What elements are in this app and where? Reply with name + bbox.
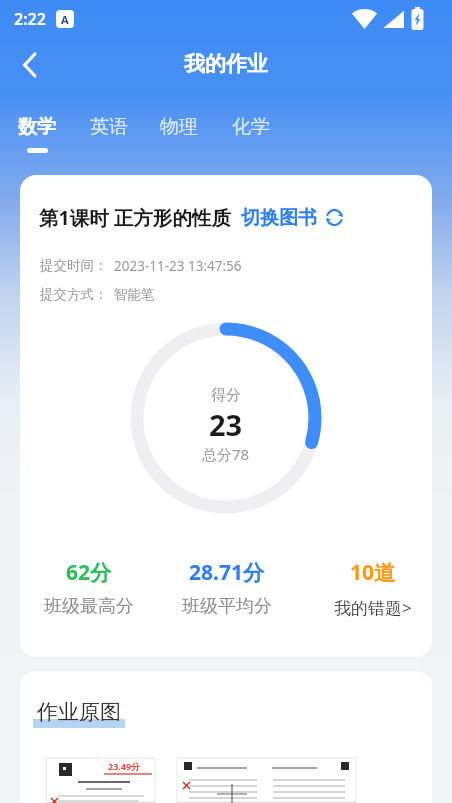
staticText: 物理: [160, 115, 198, 139]
staticText: 班级最高分: [44, 595, 134, 618]
staticText: 10道: [350, 558, 396, 587]
button[interactable]: 化学: [232, 115, 270, 139]
staticText: 第1课时 正方形的性质: [39, 204, 231, 231]
staticText: 得分: [211, 386, 241, 405]
staticText: A: [61, 12, 69, 27]
staticText: 班级平均分: [182, 595, 272, 618]
staticText: 作业原图: [37, 699, 121, 725]
button[interactable]: 数学: [18, 115, 56, 153]
staticText: 数学: [18, 115, 56, 139]
button[interactable]: 第1课时 正方形的性质: [39, 204, 344, 231]
staticText: 切换图书: [241, 206, 317, 230]
staticText: 23: [209, 405, 243, 444]
staticText: 2:22: [14, 8, 46, 30]
staticText: 总分78: [202, 444, 250, 464]
staticText: 我的作业: [184, 51, 268, 77]
staticText: 23.49分: [108, 760, 141, 772]
staticText: 英语: [90, 115, 128, 139]
button[interactable]: 10道: [304, 558, 432, 619]
staticText: 28.71分: [189, 558, 264, 587]
staticText: 62分: [66, 558, 112, 587]
staticText: 2023-11-23 13:47:56: [114, 257, 242, 275]
button[interactable]: 23.49分: [46, 758, 155, 803]
staticText: 我的错题>: [334, 596, 412, 619]
button[interactable]: 英语: [90, 115, 128, 139]
staticText: 提交方式：: [40, 286, 108, 303]
staticText: 提交时间：: [40, 257, 108, 274]
button[interactable]: 物理: [160, 115, 198, 139]
staticText: 化学: [232, 115, 270, 139]
staticText: 智能笔: [114, 286, 155, 303]
button[interactable]: [177, 758, 356, 803]
button[interactable]: [14, 49, 46, 81]
